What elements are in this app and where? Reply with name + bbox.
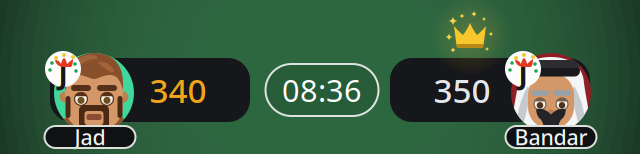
button[interactable]: 08:36 <box>265 64 378 116</box>
staticText: Jad <box>74 123 105 151</box>
staticText: 08:36 <box>282 70 362 110</box>
button[interactable]: Bandar <box>505 126 596 148</box>
staticText: 350 <box>433 68 490 112</box>
staticText: 340 <box>149 68 206 112</box>
staticText: Bandar <box>514 123 587 151</box>
button[interactable]: Jad <box>44 126 135 148</box>
staticText: J <box>518 55 527 93</box>
staticText: J <box>58 55 67 93</box>
